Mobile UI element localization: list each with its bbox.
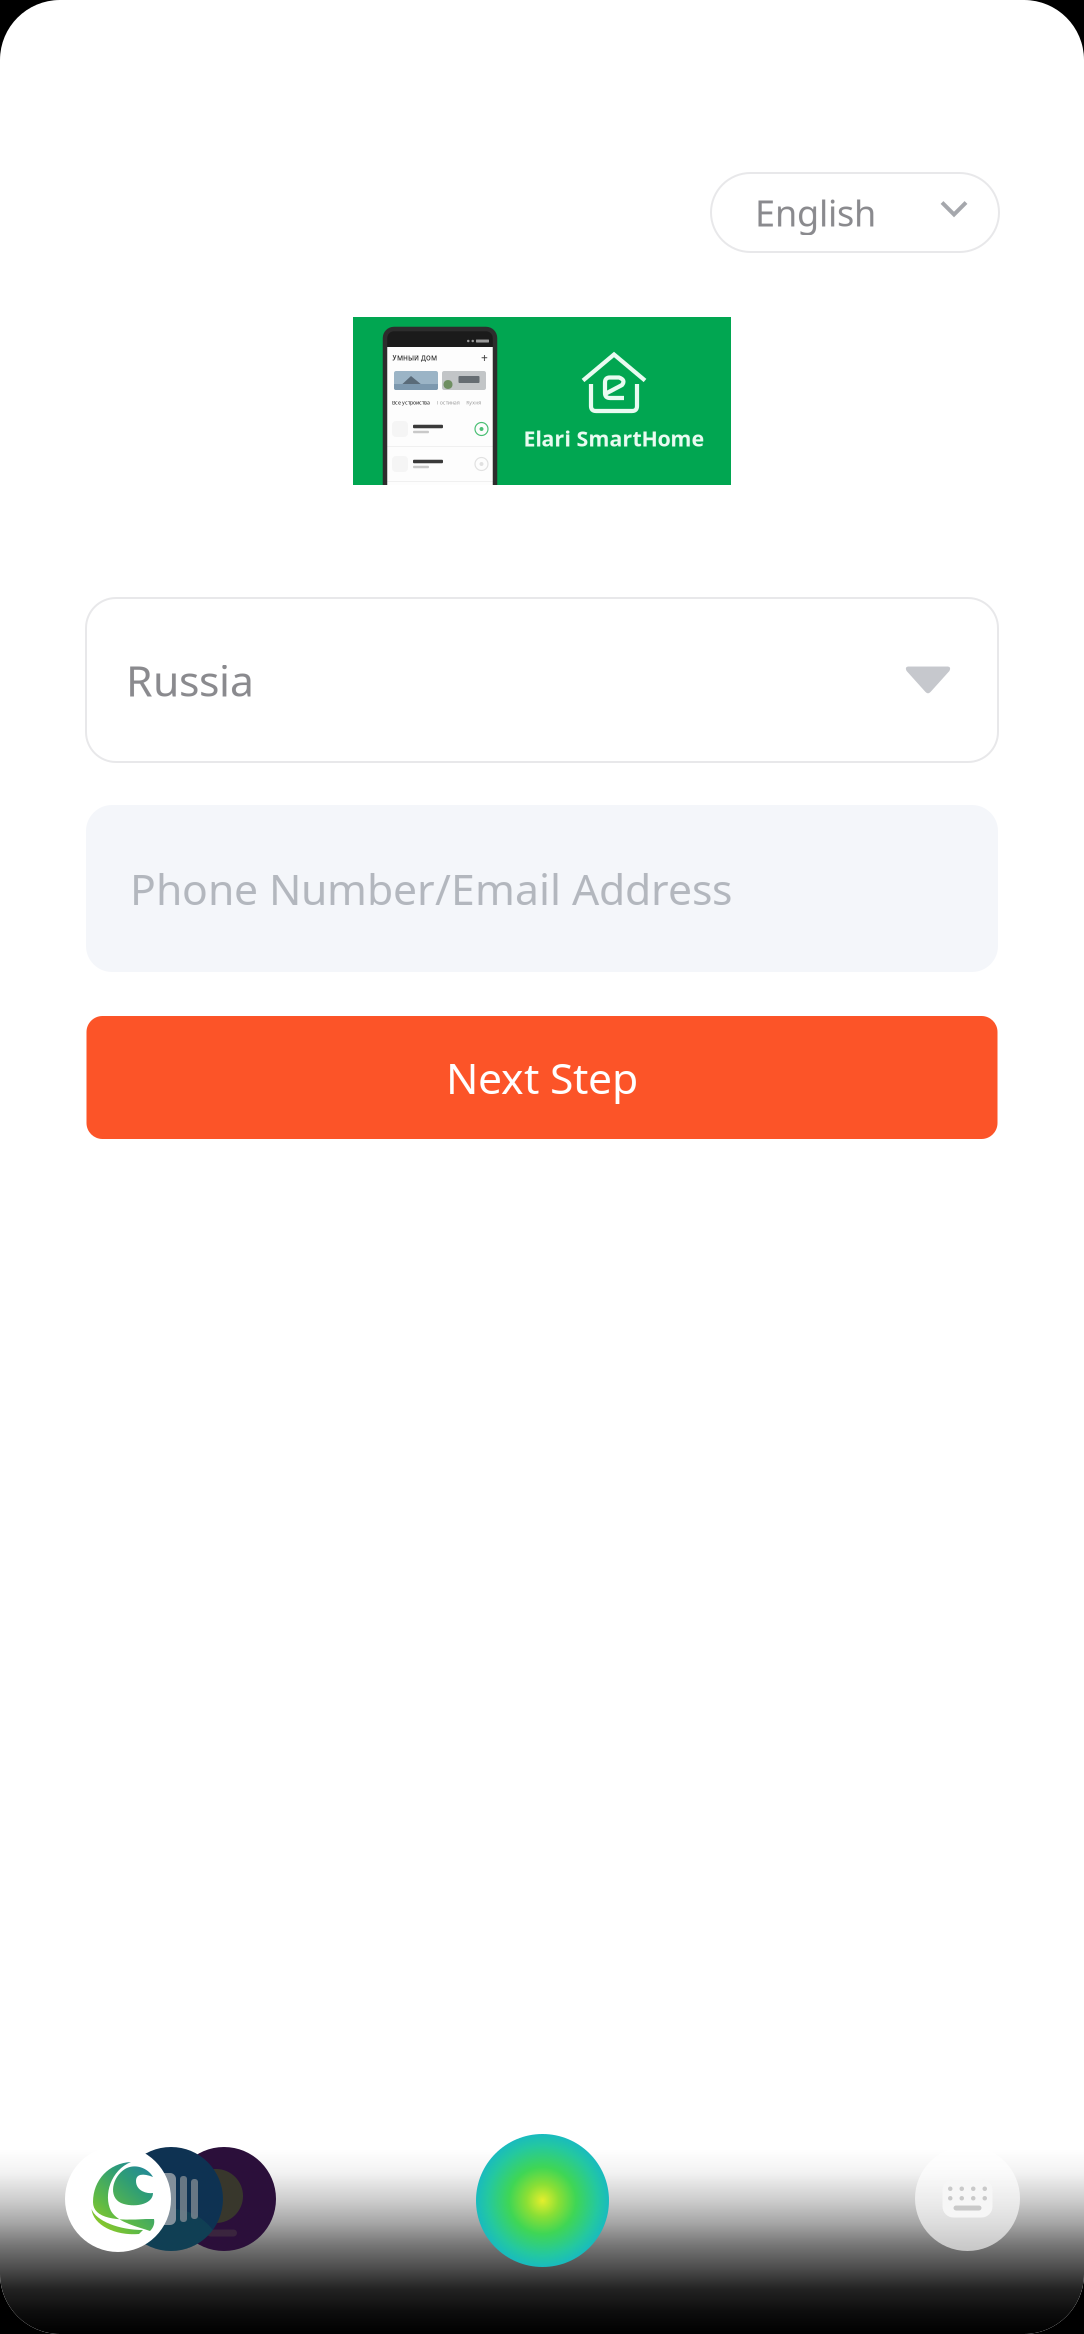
button[interactable]: Recent apps: [65, 2146, 280, 2252]
staticText: Умный дом: [392, 352, 437, 363]
staticText: Все устройства: [392, 399, 430, 406]
staticText: Phone Number/Email Address: [130, 860, 732, 917]
staticText: Кухня: [466, 399, 481, 406]
button[interactable]: Phone Number/Email Address: [86, 805, 998, 972]
staticText: English: [755, 189, 876, 236]
staticText: Next Step: [446, 1049, 638, 1106]
button[interactable]: English: [711, 173, 999, 252]
staticText: Гостиная: [437, 399, 460, 406]
staticText: Russia: [126, 652, 254, 708]
button[interactable]: Keyboard: [915, 2146, 1020, 2251]
staticText: +: [481, 349, 488, 365]
button[interactable]: Next Step: [86, 1016, 997, 1139]
button[interactable]: Assistant: [476, 2134, 609, 2267]
staticText: Elari SmartHome: [523, 424, 704, 452]
button[interactable]: Russia: [86, 598, 998, 762]
